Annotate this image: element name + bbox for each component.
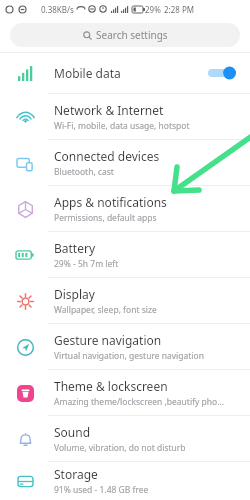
button[interactable]: Gesture navigation xyxy=(0,324,250,369)
button[interactable]: Mobile data xyxy=(0,53,250,93)
button[interactable]: Display xyxy=(0,278,250,323)
staticText: Wallpaper, sleep, font size xyxy=(54,304,157,316)
button[interactable]: Storage xyxy=(0,462,250,500)
staticText: Battery xyxy=(54,240,96,256)
staticText: Connected devices xyxy=(54,148,160,164)
button[interactable]: Network & Internet xyxy=(0,94,250,139)
staticText: 29% xyxy=(145,4,161,15)
staticText: Bluetooth, cast xyxy=(54,166,114,178)
staticText: Sound xyxy=(54,424,91,440)
staticText: Theme & lockscreen xyxy=(54,378,168,394)
staticText: 91% used - 1.48 GB free xyxy=(54,484,149,496)
staticText: Network & Internet xyxy=(54,102,164,118)
staticText: Permissions, default apps xyxy=(54,212,157,224)
button[interactable]: Search settings xyxy=(10,23,240,47)
button[interactable]: Sound xyxy=(0,416,250,461)
staticText: Wi-Fi, mobile, data usage, hotspot xyxy=(54,120,190,132)
button[interactable]: Battery xyxy=(0,232,250,277)
staticText: 29% - 5h 7m left xyxy=(54,258,119,270)
staticText: 0.38KB/s xyxy=(41,4,74,15)
staticText: Mobile data xyxy=(54,65,208,81)
staticText: Gesture navigation xyxy=(54,332,162,348)
button[interactable]: Connected devices xyxy=(0,140,250,185)
staticText: Amazing theme/lockscreen ,beautify pho… xyxy=(54,396,224,408)
button[interactable]: Apps & notifications xyxy=(0,186,250,231)
staticText: Apps & notifications xyxy=(54,194,167,210)
staticText: 2:28 PM xyxy=(164,4,195,15)
button[interactable]: Theme & lockscreen xyxy=(0,370,250,415)
staticText: Storage xyxy=(54,466,98,482)
staticText: Display xyxy=(54,286,95,302)
staticText: Volume, vibration, do not disturb xyxy=(54,442,186,454)
staticText: Virtual navigation, gesture navigation xyxy=(54,350,204,362)
staticText: Search settings xyxy=(96,28,168,42)
